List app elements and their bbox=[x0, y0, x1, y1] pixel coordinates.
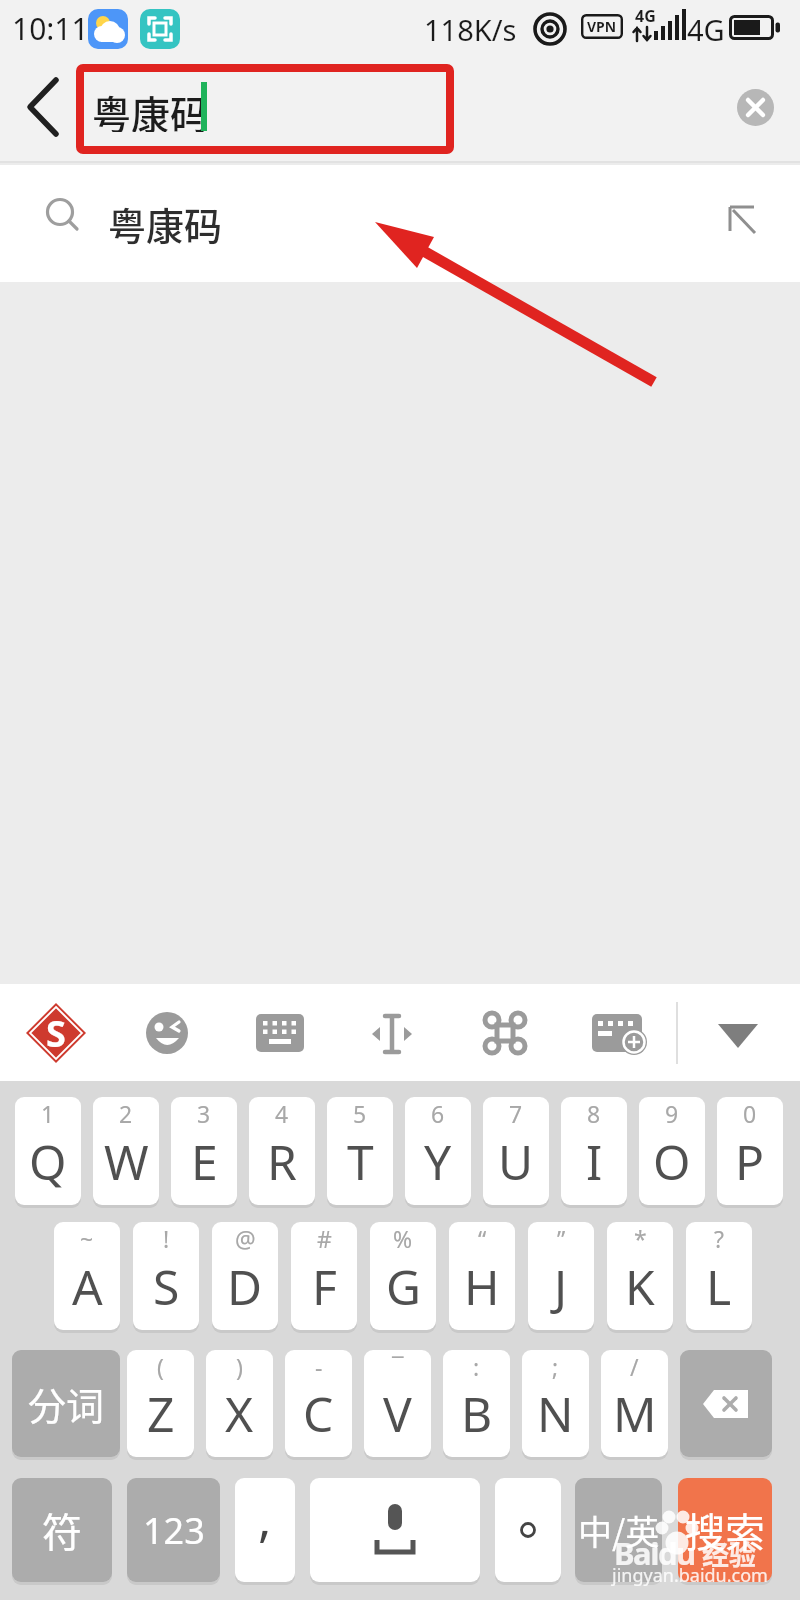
button[interactable]: % bbox=[370, 1222, 436, 1330]
button[interactable]: “ bbox=[449, 1222, 515, 1330]
staticText: 1 bbox=[41, 1098, 55, 1129]
staticText: C bbox=[303, 1381, 334, 1446]
staticText: U bbox=[498, 1129, 534, 1194]
staticText: H bbox=[464, 1254, 500, 1319]
staticText: 符 bbox=[42, 1501, 82, 1559]
button[interactable] bbox=[256, 1014, 304, 1052]
staticText: T bbox=[347, 1129, 374, 1194]
button[interactable]: 符 bbox=[12, 1478, 112, 1582]
staticText: G bbox=[386, 1254, 421, 1319]
button[interactable] bbox=[495, 1478, 561, 1582]
staticText: ) bbox=[236, 1351, 243, 1382]
staticText: # bbox=[317, 1223, 332, 1254]
staticText: Z bbox=[147, 1381, 175, 1446]
staticText: 粤康码 bbox=[108, 196, 223, 251]
staticText: 8 bbox=[587, 1098, 601, 1129]
staticText: ( bbox=[157, 1351, 164, 1382]
button[interactable]: S bbox=[26, 1003, 86, 1063]
button[interactable] bbox=[737, 89, 774, 126]
staticText: 分词 bbox=[28, 1376, 105, 1431]
button[interactable] bbox=[368, 1012, 416, 1056]
button[interactable] bbox=[310, 1478, 480, 1582]
button[interactable] bbox=[680, 1350, 772, 1457]
staticText: J bbox=[554, 1254, 568, 1319]
staticText: W bbox=[104, 1129, 149, 1194]
staticText: S bbox=[153, 1254, 180, 1319]
button[interactable]: ( bbox=[127, 1350, 194, 1457]
button[interactable]: 4 bbox=[249, 1097, 315, 1205]
button[interactable]: 3 bbox=[171, 1097, 237, 1205]
staticText: O bbox=[653, 1129, 691, 1194]
staticText: “ bbox=[478, 1223, 487, 1254]
staticText: 4G bbox=[687, 10, 725, 44]
staticText: X bbox=[225, 1381, 254, 1446]
staticText: D bbox=[227, 1254, 263, 1319]
button[interactable]: - bbox=[285, 1350, 352, 1457]
staticText: Q bbox=[29, 1129, 67, 1194]
staticText: 5 bbox=[353, 1098, 367, 1129]
button[interactable]: 搜索 bbox=[678, 1478, 772, 1582]
staticText: ¯ bbox=[392, 1351, 404, 1382]
staticText: I bbox=[586, 1129, 603, 1194]
button[interactable]: 0 bbox=[717, 1097, 783, 1205]
button[interactable]: 9 bbox=[639, 1097, 705, 1205]
button[interactable]: @ bbox=[212, 1222, 278, 1330]
staticText: jingyan.baidu.com bbox=[612, 1563, 768, 1588]
staticText: 123 bbox=[143, 1506, 205, 1555]
staticText: 9 bbox=[665, 1098, 679, 1129]
staticText: 搜索 bbox=[685, 1501, 765, 1559]
button[interactable]: 6 bbox=[405, 1097, 471, 1205]
staticText: 3 bbox=[197, 1098, 211, 1129]
staticText: , bbox=[258, 1484, 272, 1552]
staticText: ! bbox=[163, 1223, 170, 1254]
button[interactable]: 8 bbox=[561, 1097, 627, 1205]
button[interactable]: 分词 bbox=[12, 1350, 120, 1457]
button[interactable]: 7 bbox=[483, 1097, 549, 1205]
staticText: : bbox=[473, 1351, 480, 1382]
staticText: ” bbox=[557, 1223, 566, 1254]
staticText: 2 bbox=[119, 1098, 133, 1129]
button[interactable]: ! bbox=[133, 1222, 199, 1330]
staticText: 6 bbox=[431, 1098, 445, 1129]
button[interactable]: / bbox=[601, 1350, 668, 1457]
button[interactable]: 5 bbox=[327, 1097, 393, 1205]
button[interactable] bbox=[146, 1012, 188, 1054]
staticText: 10:11 bbox=[12, 8, 89, 49]
button[interactable] bbox=[24, 78, 68, 136]
button[interactable]: ) bbox=[206, 1350, 273, 1457]
button[interactable]: 粤康码 bbox=[0, 165, 800, 282]
staticText: E bbox=[191, 1129, 218, 1194]
button[interactable] bbox=[483, 1011, 527, 1055]
staticText: V bbox=[383, 1381, 412, 1446]
staticText: Y bbox=[424, 1129, 452, 1194]
button[interactable]: ~ bbox=[54, 1222, 120, 1330]
staticText: 4 bbox=[275, 1098, 289, 1129]
button[interactable]: ? bbox=[686, 1222, 752, 1330]
button[interactable]: 中/英 bbox=[575, 1478, 662, 1582]
staticText: F bbox=[312, 1254, 337, 1319]
staticText: N bbox=[537, 1381, 574, 1446]
button[interactable]: * bbox=[607, 1222, 673, 1330]
button[interactable]: : bbox=[443, 1350, 510, 1457]
staticText: A bbox=[72, 1254, 103, 1319]
staticText: S bbox=[46, 1009, 66, 1058]
button[interactable]: # bbox=[291, 1222, 357, 1330]
staticText: Baidu bbox=[614, 1532, 695, 1568]
button[interactable]: ” bbox=[528, 1222, 594, 1330]
staticText: * bbox=[634, 1223, 647, 1254]
staticText: 0 bbox=[743, 1098, 757, 1129]
button[interactable]: , bbox=[235, 1478, 295, 1582]
staticText: 经验 bbox=[702, 1534, 756, 1568]
button[interactable]: 2 bbox=[93, 1097, 159, 1205]
button[interactable]: 123 bbox=[127, 1478, 220, 1582]
staticText: ~ bbox=[80, 1223, 94, 1254]
staticText: 7 bbox=[509, 1098, 523, 1129]
staticText: 4G bbox=[635, 5, 656, 27]
button[interactable] bbox=[592, 1014, 650, 1056]
button[interactable]: ¯ bbox=[364, 1350, 431, 1457]
button[interactable] bbox=[716, 1022, 762, 1052]
button[interactable]: 1 bbox=[15, 1097, 81, 1205]
staticText: ? bbox=[714, 1223, 724, 1254]
button[interactable]: ; bbox=[522, 1350, 589, 1457]
staticText: M bbox=[613, 1381, 657, 1446]
